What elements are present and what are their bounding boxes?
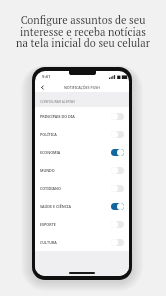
button[interactable]: ESPORTE (35, 215, 129, 233)
button[interactable]: Voltar (39, 84, 46, 91)
button[interactable]: Desativado (111, 239, 124, 246)
button[interactable]: Desativado (111, 221, 124, 228)
button[interactable]: PRINCIPAIS DO DIA (35, 107, 129, 125)
staticText: ECONOMIA (40, 150, 61, 155)
staticText: ESPORTE (40, 222, 56, 227)
staticText: POLÍTICA (40, 132, 57, 137)
button[interactable]: Desativado (111, 167, 124, 174)
button[interactable]: CULTURA (35, 233, 129, 251)
staticText: PRINCIPAIS DO DIA (40, 114, 75, 119)
button[interactable]: Desativado (111, 185, 124, 192)
staticText: Configure assuntos de seu interesse e re… (16, 13, 150, 50)
button[interactable]: Desativado (111, 113, 124, 120)
button[interactable]: Ativado (111, 203, 124, 210)
staticText: CONFIGURAR ALERTAS (40, 99, 76, 103)
button[interactable]: SAÚDE E CIÊNCIA (35, 197, 129, 215)
button[interactable]: Ativado (111, 149, 124, 156)
staticText: NOTIFICAÇÕES PUSH (64, 85, 100, 90)
staticText: 9:41 (42, 74, 51, 80)
button[interactable]: MUNDO (35, 161, 129, 179)
button[interactable]: ECONOMIA (35, 143, 129, 161)
staticText: SAÚDE E CIÊNCIA (40, 204, 71, 209)
staticText: COTIDIANO (40, 186, 61, 191)
staticText: MUNDO (40, 168, 55, 173)
button[interactable]: COTIDIANO (35, 179, 129, 197)
staticText: CULTURA (40, 240, 57, 245)
button[interactable]: Desativado (111, 131, 124, 138)
button[interactable]: POLÍTICA (35, 125, 129, 143)
